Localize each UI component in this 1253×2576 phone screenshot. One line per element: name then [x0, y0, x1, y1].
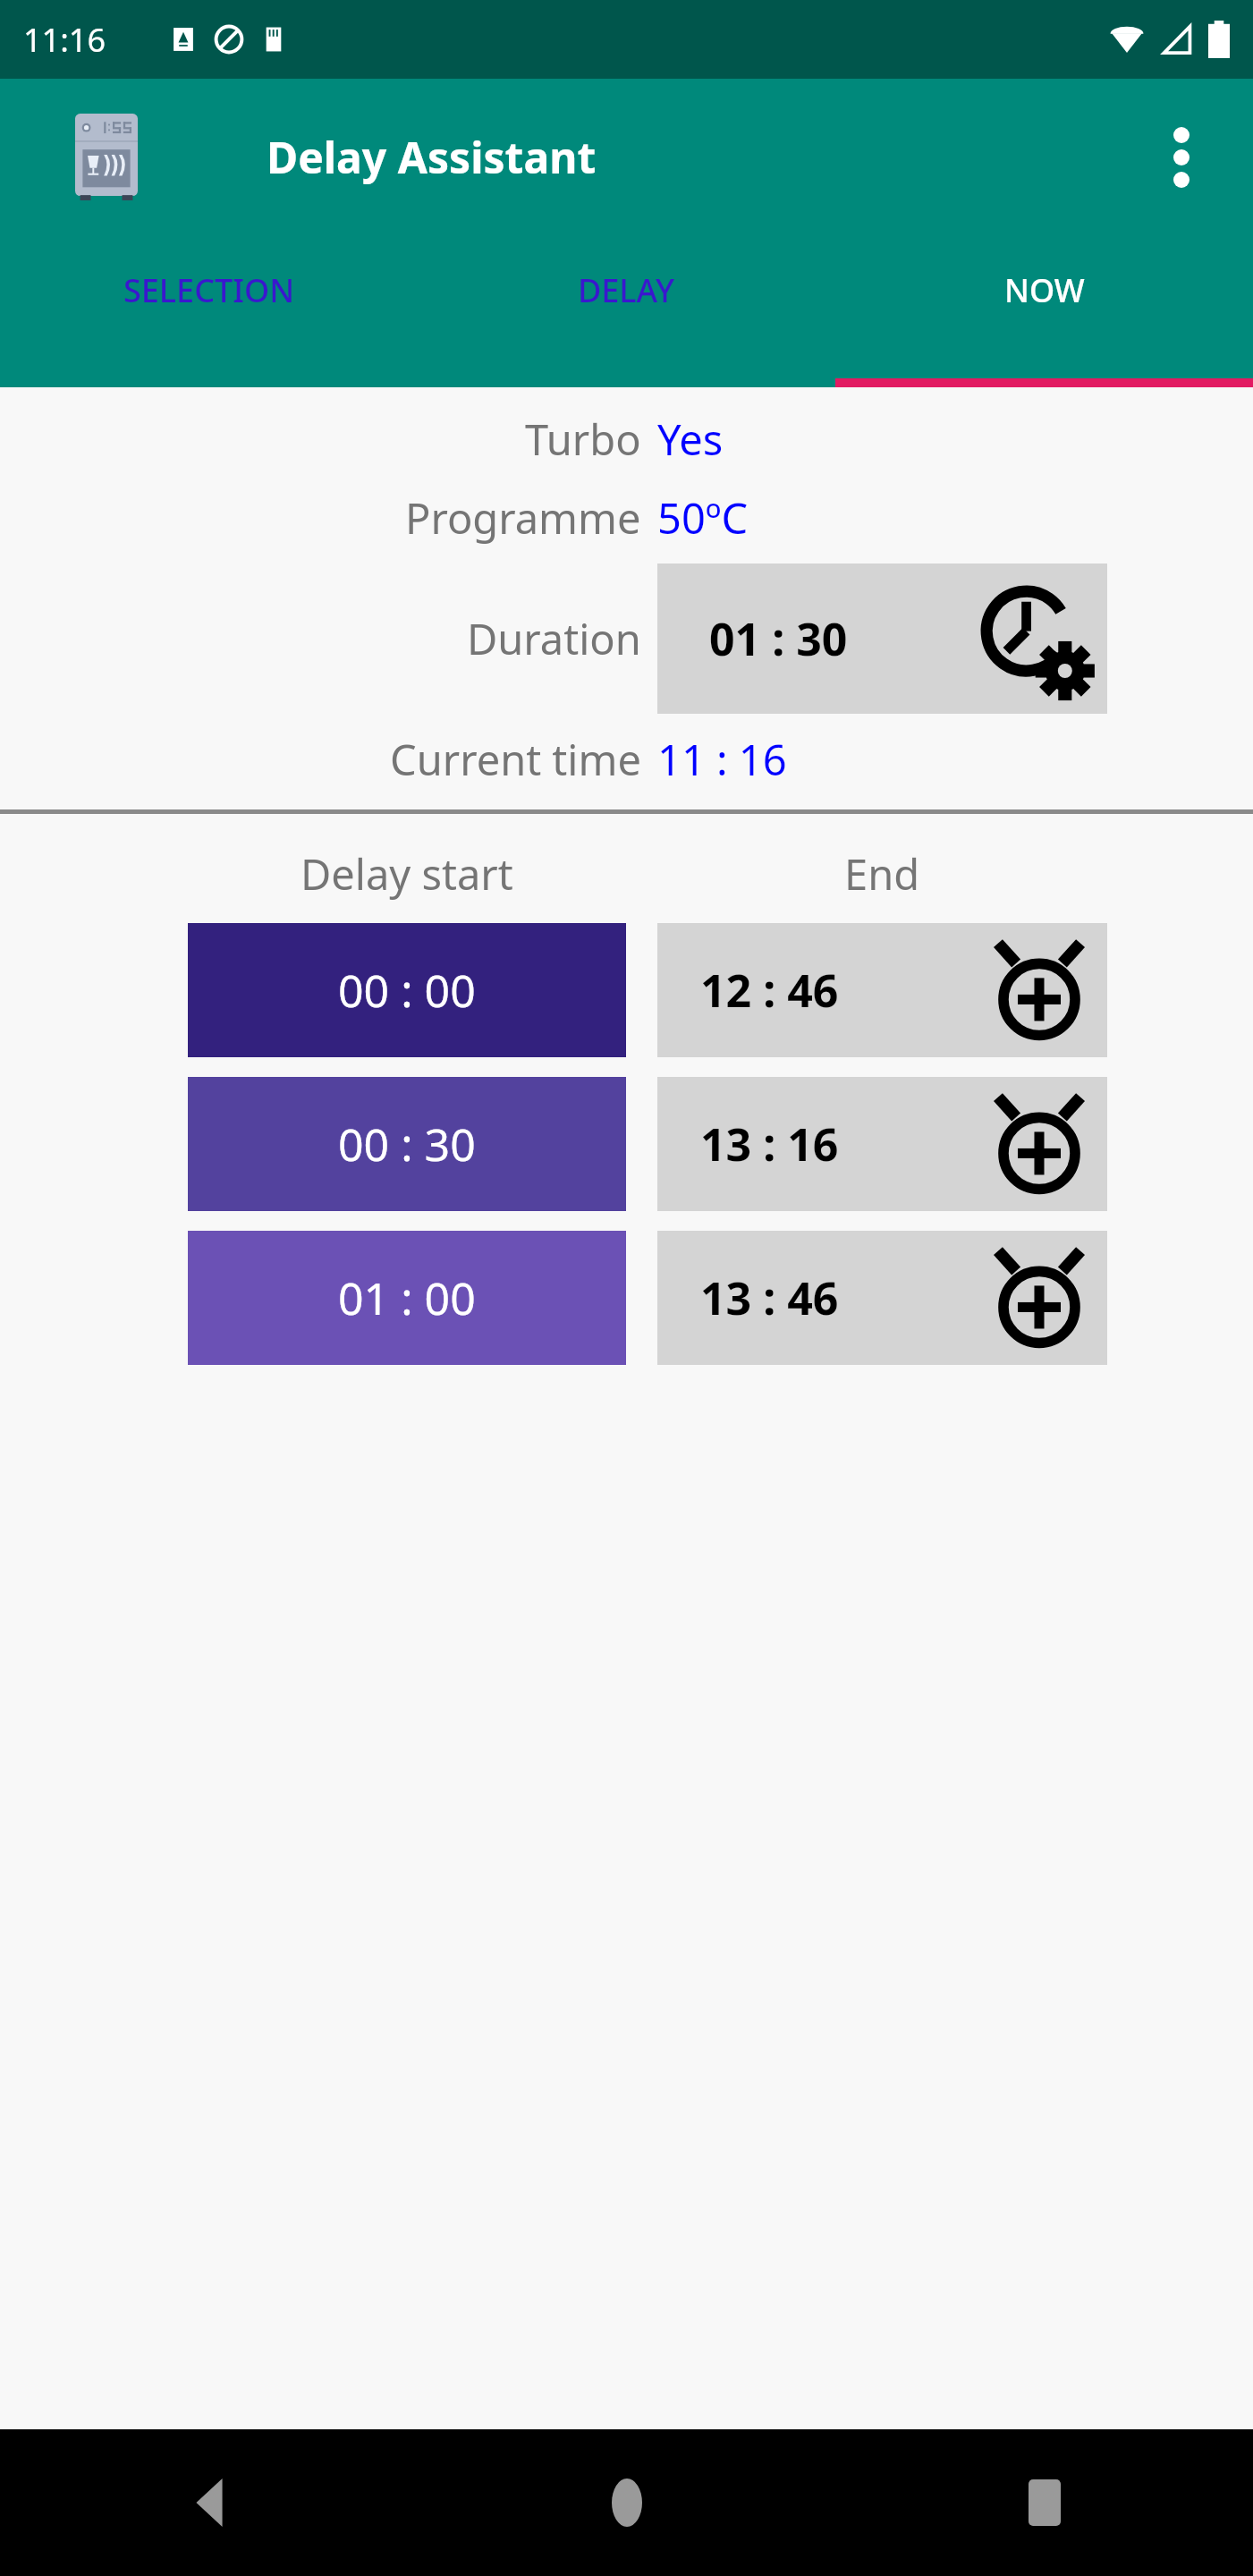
button[interactable]: 12 : 46	[657, 923, 1107, 1057]
button[interactable]: SELECTION	[0, 235, 418, 387]
staticText: 13 : 16	[700, 1114, 839, 1174]
staticText: SELECTION	[123, 268, 295, 312]
staticText: 01 : 30	[709, 608, 848, 669]
other: Set alarm	[987, 1246, 1091, 1350]
staticText: 12 : 46	[700, 960, 839, 1021]
button[interactable]: Back	[0, 2429, 418, 2576]
button[interactable]: 00 : 30	[188, 1077, 626, 1211]
button[interactable]: 13 : 46	[657, 1231, 1107, 1365]
button[interactable]: More options	[1137, 113, 1226, 202]
button[interactable]: 01 : 30	[657, 563, 1107, 714]
button[interactable]: 00 : 00	[188, 923, 626, 1057]
staticText: 00 : 00	[338, 960, 476, 1021]
staticText: 50ºC	[657, 489, 749, 547]
other: Edit duration	[980, 585, 1088, 692]
staticText: 11:16	[23, 18, 106, 62]
staticText: 11 : 16	[657, 731, 787, 788]
staticText: Current time	[390, 731, 641, 788]
button[interactable]: 13 : 16	[657, 1077, 1107, 1211]
other: Set alarm	[987, 938, 1091, 1042]
button[interactable]: DELAY	[418, 235, 835, 387]
staticText: DELAY	[578, 268, 675, 312]
button[interactable]: Home	[418, 2429, 835, 2576]
staticText: 01 : 00	[338, 1267, 476, 1328]
staticText: Delay start	[301, 845, 513, 902]
button[interactable]: 01 : 00	[188, 1231, 626, 1365]
staticText: Duration	[467, 610, 641, 667]
button[interactable]: NOW	[835, 235, 1253, 387]
staticText: NOW	[1004, 268, 1085, 312]
other: Set alarm	[987, 1092, 1091, 1196]
staticText: Delay Assistant	[267, 128, 597, 186]
staticText: Turbo	[525, 411, 641, 468]
staticText: 00 : 30	[338, 1114, 476, 1174]
staticText: Yes	[657, 411, 724, 468]
staticText: End	[844, 845, 920, 902]
staticText: 13 : 46	[700, 1267, 839, 1328]
button[interactable]: Recent apps	[835, 2429, 1253, 2576]
staticText: Programme	[405, 489, 641, 547]
